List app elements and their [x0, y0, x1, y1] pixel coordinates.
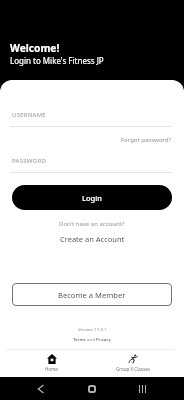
button[interactable]: Forgot password?	[108, 134, 172, 146]
staticText: and	[86, 336, 96, 342]
button[interactable]: Group X Classes	[92, 349, 173, 372]
staticText: Home	[45, 366, 58, 372]
staticText: PASSWORD	[12, 157, 47, 165]
staticText: Login to Mike's Fitness JP	[10, 55, 104, 66]
staticText: Welcome!	[10, 41, 60, 55]
button[interactable]: Become a Member	[12, 283, 172, 306]
staticText: Create an Account	[60, 234, 125, 244]
staticText: Login	[82, 193, 102, 203]
button[interactable]: Back	[16, 377, 66, 400]
staticText: Group X Classes	[116, 366, 150, 372]
staticText: Don't have an account?	[59, 220, 125, 228]
staticText: USERNAME	[12, 111, 46, 119]
staticText: Version 11.3.1	[78, 326, 107, 332]
button[interactable]: Privacy	[96, 336, 111, 342]
button[interactable]: Login	[12, 185, 172, 210]
staticText: Forgot password?	[121, 136, 172, 144]
button[interactable]: Recent apps	[117, 377, 168, 400]
button[interactable]: Home	[11, 349, 92, 372]
button[interactable]: Terms	[73, 336, 86, 342]
button[interactable]: Create an Account	[0, 232, 184, 246]
button[interactable]: Home	[66, 377, 117, 400]
staticText: Become a Member	[58, 290, 126, 300]
